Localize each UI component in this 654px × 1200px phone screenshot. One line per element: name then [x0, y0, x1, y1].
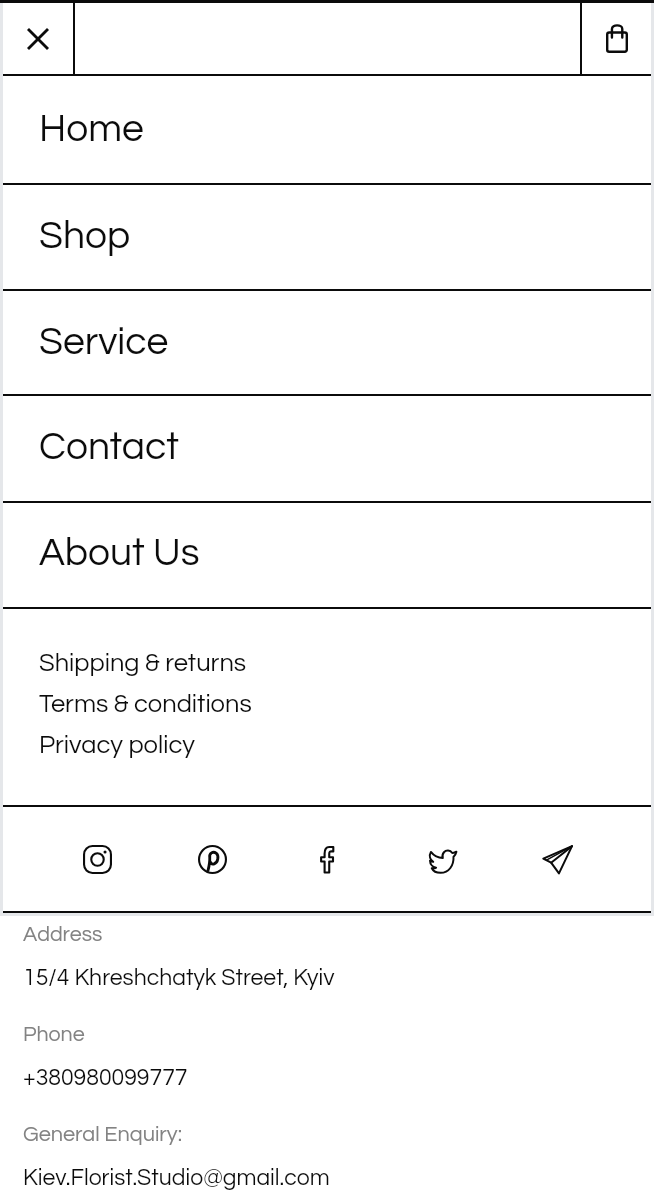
- button[interactable]: About Us: [3, 501, 651, 607]
- staticText: Kiev.Florist.Studio@gmail.com: [23, 1159, 330, 1191]
- button[interactable]: Facebook: [305, 837, 349, 881]
- staticText: 15/4 Khreshchatyk Street, Kyiv: [23, 959, 335, 991]
- button[interactable]: Terms & conditions: [39, 680, 252, 721]
- button[interactable]: Privacy policy: [39, 721, 195, 762]
- staticText: Phone: [23, 1017, 85, 1047]
- button[interactable]: Shop: [3, 184, 651, 290]
- button[interactable]: Service: [3, 290, 651, 396]
- button[interactable]: Shipping & returns: [39, 639, 247, 680]
- staticText: Terms & conditions: [39, 680, 252, 721]
- button[interactable]: Shopping bag: [582, 3, 651, 74]
- staticText: Contact: [39, 416, 179, 471]
- staticText: Shipping & returns: [39, 639, 247, 680]
- button[interactable]: Contact: [3, 395, 651, 501]
- button[interactable]: Instagram: [75, 837, 119, 881]
- staticText: +380980099777: [23, 1059, 188, 1091]
- staticText: Privacy policy: [39, 721, 195, 762]
- staticText: Home: [39, 98, 144, 153]
- button[interactable]: Home: [3, 74, 651, 183]
- staticText: Address: [23, 917, 103, 947]
- staticText: Shop: [39, 205, 131, 260]
- button[interactable]: Pinterest: [190, 837, 234, 881]
- button[interactable]: Telegram: [535, 837, 579, 881]
- button[interactable]: Close menu: [3, 3, 73, 74]
- button[interactable]: Twitter: [420, 837, 464, 881]
- staticText: About Us: [39, 522, 200, 577]
- staticText: General Enquiry:: [23, 1117, 183, 1147]
- staticText: Service: [39, 311, 169, 366]
